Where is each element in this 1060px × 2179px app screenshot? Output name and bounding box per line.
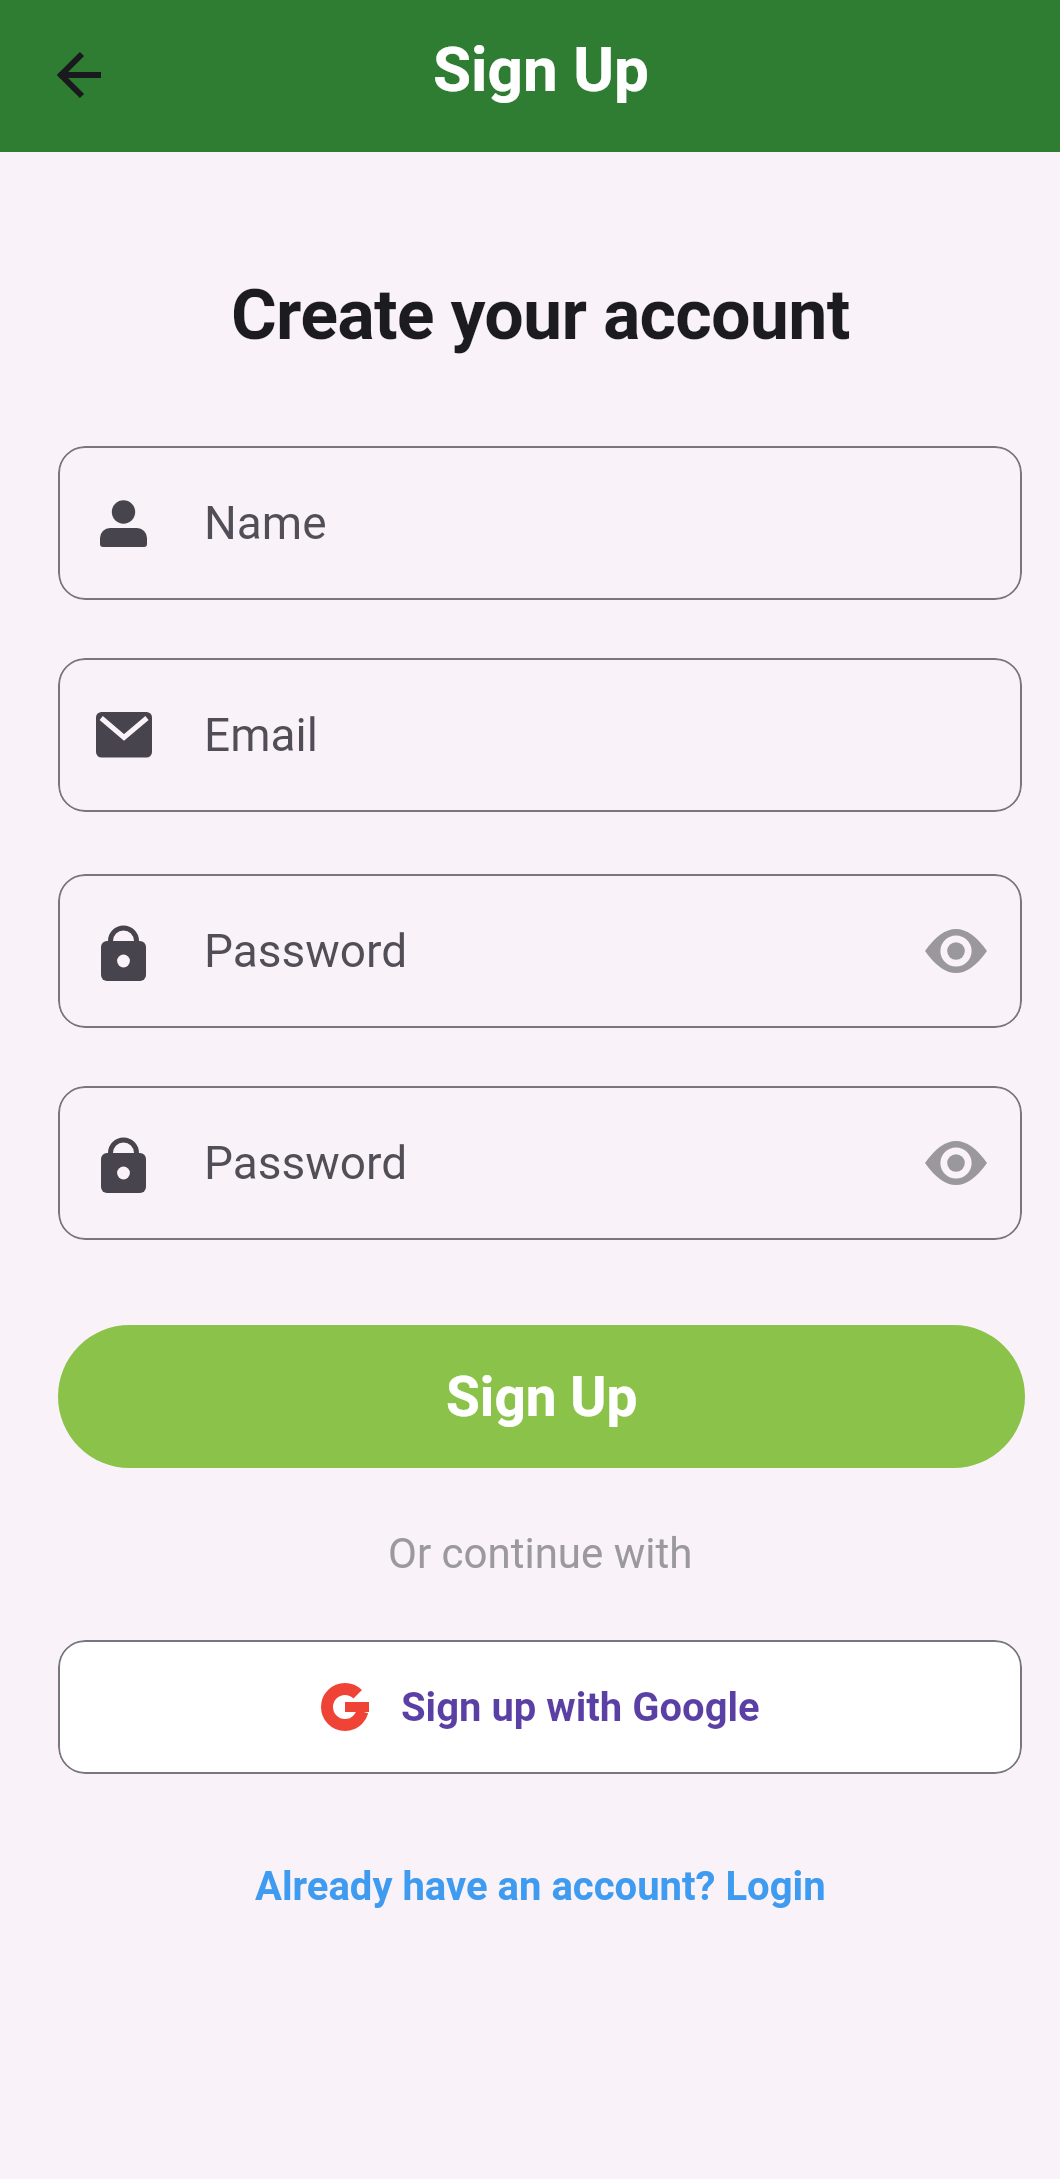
button[interactable] xyxy=(53,49,105,101)
staticText: Or continue with xyxy=(388,1529,693,1578)
button[interactable]: Password xyxy=(58,874,1022,1028)
staticText: Email xyxy=(204,708,318,762)
staticText: Name xyxy=(204,496,327,550)
button[interactable]: Sign up with Google xyxy=(58,1640,1022,1774)
staticText: Create your account xyxy=(231,274,850,356)
button[interactable]: Sign Up xyxy=(58,1325,1025,1468)
staticText: Sign Up xyxy=(433,33,649,106)
button[interactable]: Name xyxy=(58,446,1022,600)
staticText: Password xyxy=(204,924,408,978)
staticText: Password xyxy=(204,1136,408,1190)
staticText: Already have an account? Login xyxy=(255,1863,826,1910)
staticText: Sign up with Google xyxy=(401,1684,760,1731)
button[interactable]: Email xyxy=(58,658,1022,812)
button[interactable]: Password xyxy=(58,1086,1022,1240)
staticText: Sign Up xyxy=(446,1365,638,1429)
button[interactable]: Already have an account? Login xyxy=(10,1846,1060,1926)
